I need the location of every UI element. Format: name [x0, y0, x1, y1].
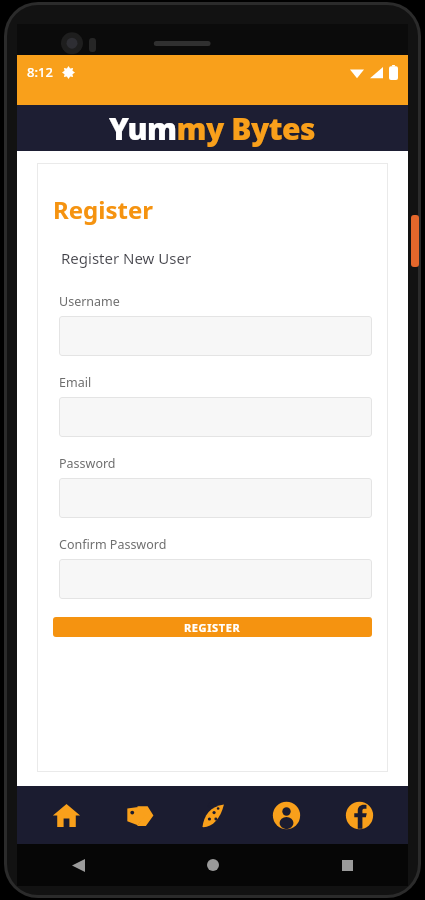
- staticText: Confirm Password: [59, 536, 167, 553]
- staticText: Register New User: [61, 248, 192, 268]
- staticText: Username: [59, 293, 120, 310]
- staticText: 8:12: [27, 63, 53, 81]
- button[interactable]: [59, 397, 372, 437]
- button[interactable]: [59, 478, 372, 518]
- button[interactable]: Back: [65, 852, 91, 878]
- button[interactable]: [59, 316, 372, 356]
- button[interactable]: [59, 559, 372, 599]
- button[interactable]: Home: [200, 852, 226, 878]
- button[interactable]: Menu: [189, 791, 237, 839]
- staticText: Password: [59, 455, 116, 472]
- button[interactable]: Profile: [262, 791, 310, 839]
- button[interactable]: Recents: [334, 852, 360, 878]
- button[interactable]: REGISTER: [53, 617, 372, 637]
- button[interactable]: Facebook: [335, 791, 383, 839]
- staticText: Email: [59, 374, 92, 391]
- staticText: REGISTER: [184, 620, 241, 635]
- button[interactable]: Home: [42, 791, 90, 839]
- staticText: Yummy Bytes: [109, 108, 316, 149]
- staticText: Register: [53, 193, 153, 226]
- button[interactable]: Offers: [115, 791, 163, 839]
